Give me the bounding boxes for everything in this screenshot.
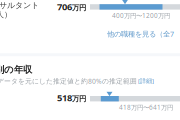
- staticText: 706: [57, 0, 72, 13]
- button[interactable]: 他の職種を見る（全7: [107, 29, 174, 39]
- staticText: 418万円〜641万円: [119, 103, 173, 112]
- staticText: 他の職種を見る（全7: [107, 29, 174, 39]
- staticText: 人）: [0, 10, 12, 20]
- staticText: 別の年収: [0, 64, 32, 76]
- button[interactable]: [詳細]: [138, 77, 154, 85]
- staticText: 400万円〜1200万円: [112, 11, 170, 20]
- staticText: 万円: [72, 3, 86, 12]
- staticText: [詳細]: [138, 77, 154, 85]
- staticText: データを元にした推定値と約80%の推定範囲: [0, 76, 137, 86]
- staticText: 万円: [72, 94, 86, 103]
- staticText: 518: [57, 91, 72, 104]
- staticText: サルタント: [0, 0, 39, 10]
